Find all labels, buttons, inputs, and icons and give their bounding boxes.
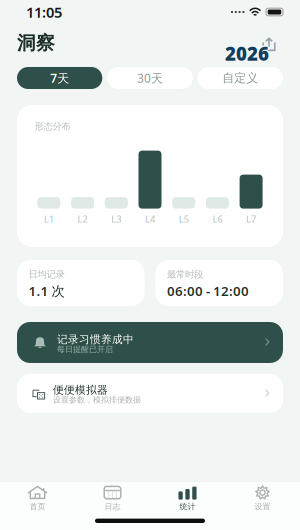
staticText: 2026 [226,41,270,66]
button[interactable]: 日志 [75,486,150,516]
staticText: 06:00 - 12:00 [167,282,249,300]
button[interactable]: 便便模拟器 [17,374,283,413]
staticText: 洞察 [17,31,55,54]
button[interactable]: 自定义 [198,67,283,89]
staticText: L3 [111,213,121,225]
staticText: 设置 [254,502,270,511]
staticText: L4 [145,213,155,225]
staticText: 记录习惯养成中 [57,333,134,346]
staticText: 2026 [224,41,268,66]
staticText: 日志 [104,502,120,511]
staticText: 统计 [179,502,195,511]
staticText: 最常时段 [167,268,203,280]
staticText: 便便模拟器 [53,383,108,396]
button[interactable]: 记录习惯养成中 [17,322,283,363]
staticText: 2026 [225,41,269,66]
staticText: 2026 [225,40,269,64]
staticText: 1.1 次 [28,282,64,300]
staticText: 每日提醒已开启 [57,344,113,354]
staticText: L1 [44,213,54,225]
staticText: L2 [78,213,88,225]
button[interactable]: 7天 [17,67,102,89]
staticText: 形态分布 [34,120,70,132]
staticText: L6 [212,213,222,225]
button[interactable]: 30天 [107,67,193,89]
staticText: 自定义 [222,71,258,85]
staticText: 30天 [137,70,163,86]
button[interactable]: 首页 [0,486,75,516]
button[interactable]: 设置 [225,486,300,516]
staticText: 首页 [29,502,45,511]
staticText: L5 [179,213,189,225]
staticText: 11:05 [26,2,62,22]
staticText: 设置参数，模拟排便数据 [53,395,141,405]
staticText: 日均记录 [28,268,64,280]
staticText: 2026 [225,42,269,67]
staticText: 7天 [50,70,69,86]
staticText: L7 [246,213,256,225]
button[interactable]: 统计 [150,486,225,516]
